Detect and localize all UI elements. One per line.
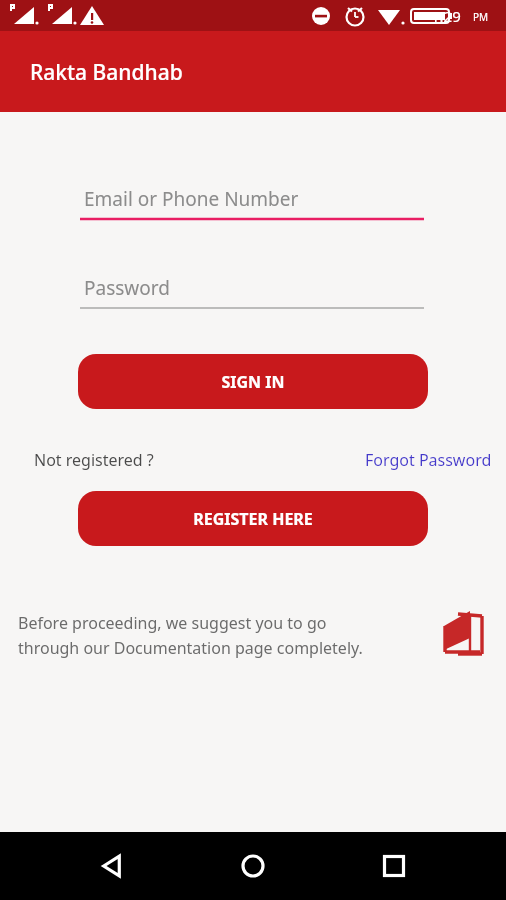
button[interactable]: Recent apps [368, 840, 420, 892]
staticText: Forgot Password [365, 449, 492, 471]
button[interactable]: Email or Phone Number [80, 186, 424, 221]
staticText: REGISTER HERE [193, 508, 313, 530]
staticText: Email or Phone Number [84, 186, 299, 212]
button[interactable]: SIGN IN [78, 354, 428, 409]
button[interactable]: Not registered ? [34, 449, 154, 471]
button[interactable]: Password [80, 275, 424, 310]
button[interactable]: Home [227, 840, 279, 892]
staticText: PM [473, 10, 489, 24]
button[interactable]: Documentation [436, 608, 490, 662]
staticText: Before proceeding, we suggest you to go … [18, 612, 368, 658]
staticText: 1:29 [431, 6, 461, 26]
button[interactable]: Forgot Password [365, 449, 492, 471]
staticText: Password [84, 275, 170, 301]
staticText: Rakta Bandhab [30, 58, 183, 87]
button[interactable]: REGISTER HERE [78, 491, 428, 546]
staticText: Not registered ? [34, 449, 154, 471]
staticText: SIGN IN [221, 371, 285, 393]
button[interactable]: Back [86, 840, 138, 892]
